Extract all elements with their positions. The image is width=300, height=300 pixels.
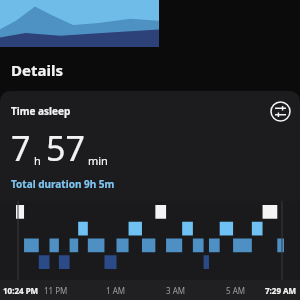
staticText: Total duration 9h 5m: [11, 177, 115, 191]
staticText: 1 AM: [106, 285, 126, 296]
staticText: Time asleep: [11, 104, 71, 118]
staticText: Details: [11, 60, 63, 80]
button[interactable]: Sleep stages chart: [0, 201, 300, 280]
button[interactable]: Adjust sleep settings: [268, 99, 292, 123]
staticText: min: [88, 153, 108, 168]
staticText: 7:29 AM: [265, 285, 297, 296]
staticText: 7: [11, 125, 31, 171]
staticText: 11 PM: [44, 285, 68, 296]
staticText: 5 AM: [226, 285, 246, 296]
staticText: 57: [46, 125, 85, 171]
staticText: 3 AM: [166, 285, 186, 296]
staticText: 10:24 PM: [3, 285, 39, 296]
staticText: h: [34, 153, 41, 168]
